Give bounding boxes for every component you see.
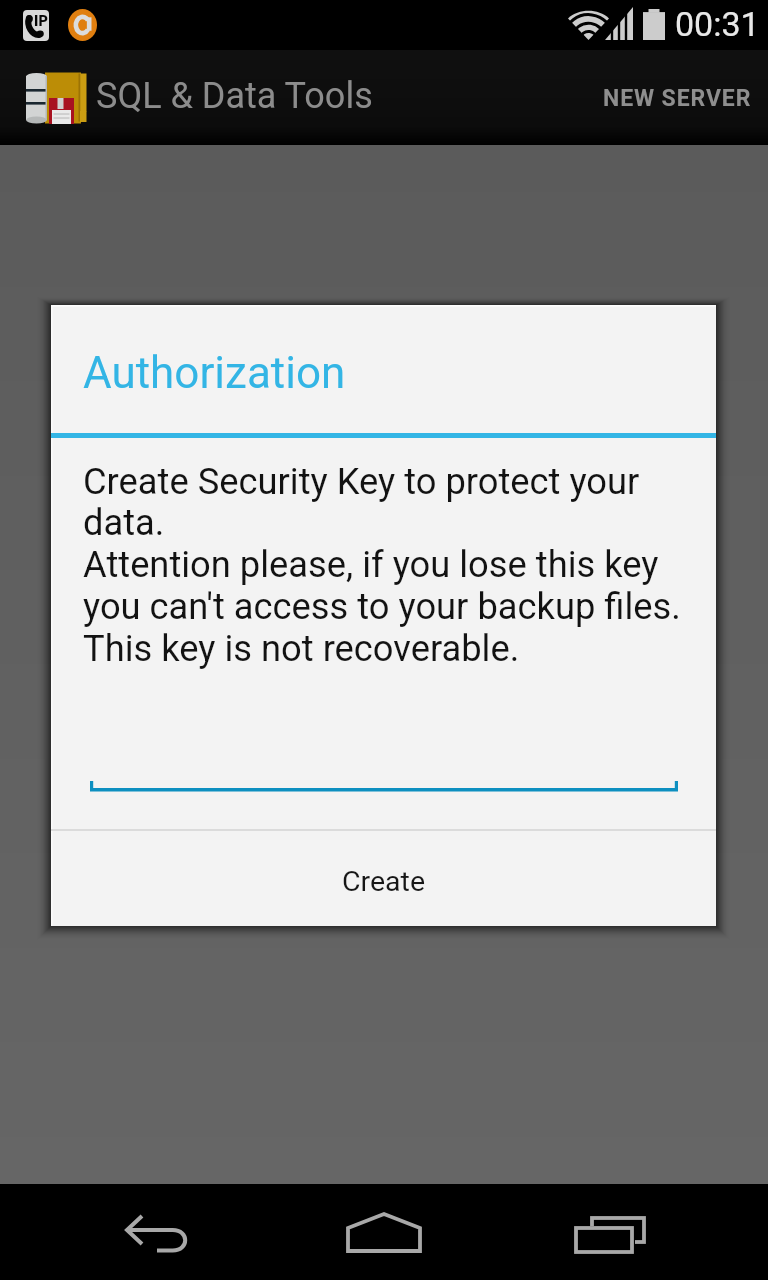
staticText: Authorization (83, 347, 346, 399)
staticText: NEW SERVER (603, 85, 752, 112)
button[interactable]: Recents (558, 1196, 662, 1268)
button[interactable]: Security key input (90, 733, 678, 795)
staticText: Create (342, 865, 425, 898)
button[interactable]: NEW SERVER (585, 50, 768, 145)
button[interactable]: Create (51, 831, 716, 926)
button[interactable]: Back (102, 1196, 212, 1268)
staticText: 00:31 (675, 4, 760, 44)
button[interactable]: Home (330, 1196, 438, 1268)
staticText: Create Security Key to protect your data… (83, 460, 689, 670)
button[interactable]: SQL & Data Tools (0, 50, 389, 145)
staticText: IP (34, 13, 48, 30)
staticText: SQL & Data Tools (96, 75, 373, 117)
